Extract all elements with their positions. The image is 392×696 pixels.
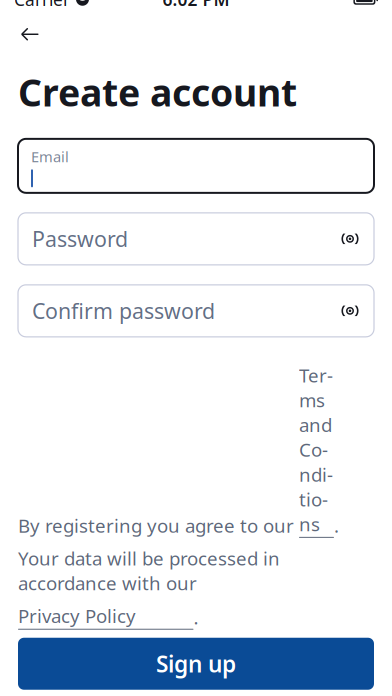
staticText: Terms and Conditions — [299, 363, 333, 536]
staticText: Confirm password — [32, 297, 215, 325]
staticText: Carrier — [14, 0, 70, 11]
button[interactable]: Sign up — [18, 638, 374, 690]
staticText: Email — [31, 147, 69, 166]
staticText: 6:02 PM — [162, 0, 229, 11]
staticText: Create account — [18, 67, 297, 117]
staticText: Your data will be processed in accordanc… — [18, 546, 280, 595]
staticText: . — [193, 605, 198, 630]
staticText: Sign up — [156, 649, 236, 679]
staticText: By registering you agree to our — [18, 513, 299, 538]
staticText: Privacy Policy — [18, 603, 136, 628]
staticText: . — [334, 513, 339, 538]
button[interactable]: Back — [12, 17, 46, 51]
staticText: Password — [32, 225, 128, 253]
